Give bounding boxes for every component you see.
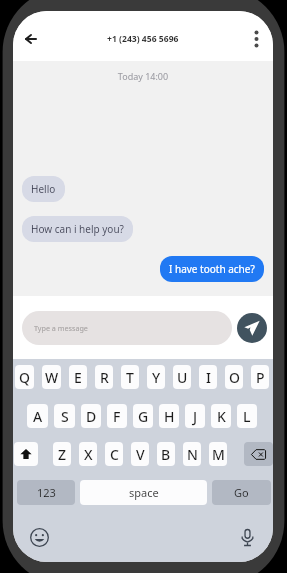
staticText: Q xyxy=(19,368,30,387)
staticText: G xyxy=(138,407,149,426)
button[interactable]: C xyxy=(105,442,123,466)
button[interactable]: U xyxy=(173,365,191,389)
button[interactable]: F xyxy=(107,404,127,428)
staticText: 123 xyxy=(37,485,56,500)
button[interactable]: E xyxy=(69,365,87,389)
staticText: D xyxy=(86,407,97,426)
button[interactable]: Y xyxy=(147,365,165,389)
button[interactable]: P xyxy=(251,365,269,389)
button[interactable]: N xyxy=(183,442,201,466)
button[interactable]: Backspace xyxy=(244,442,273,466)
staticText: P xyxy=(256,368,265,387)
button[interactable]: Z xyxy=(53,442,71,466)
button[interactable]: More options xyxy=(241,21,271,51)
staticText: How can i help you? xyxy=(31,222,124,236)
button[interactable]: A xyxy=(27,404,48,428)
button[interactable]: I have tooth ache? xyxy=(160,256,264,282)
staticText: R xyxy=(100,368,109,387)
button[interactable]: Send xyxy=(237,313,267,343)
staticText: N xyxy=(187,445,198,464)
staticText: Go xyxy=(234,485,249,500)
staticText: K xyxy=(217,407,226,426)
button[interactable]: O xyxy=(225,365,243,389)
button[interactable]: L xyxy=(237,404,257,428)
staticText: +1 (243) 456 5696 xyxy=(107,33,179,45)
staticText: J xyxy=(193,407,198,426)
staticText: Hello xyxy=(31,182,56,196)
button[interactable]: J xyxy=(185,404,205,428)
button[interactable]: T xyxy=(121,365,139,389)
staticText: O xyxy=(229,368,240,387)
button[interactable]: W xyxy=(42,365,61,389)
button[interactable]: Go xyxy=(212,480,271,505)
button[interactable]: Type a message xyxy=(22,311,232,345)
staticText: Today 14:00 xyxy=(22,70,264,82)
staticText: L xyxy=(243,407,251,426)
staticText: A xyxy=(33,407,43,426)
staticText: H xyxy=(164,407,175,426)
button[interactable]: Back xyxy=(17,25,45,53)
staticText: M xyxy=(212,445,225,464)
button[interactable]: Q xyxy=(15,365,34,389)
button[interactable]: space xyxy=(80,480,207,505)
button[interactable]: M xyxy=(209,442,227,466)
button[interactable]: 123 xyxy=(17,480,75,505)
staticText: F xyxy=(113,407,121,426)
button[interactable]: Emoji xyxy=(27,525,51,549)
button[interactable]: R xyxy=(95,365,113,389)
button[interactable]: S xyxy=(54,404,75,428)
button[interactable]: H xyxy=(159,404,179,428)
button[interactable]: Shift xyxy=(14,442,38,466)
button[interactable]: V xyxy=(131,442,149,466)
staticText: Y xyxy=(152,368,161,387)
staticText: Type a message xyxy=(34,323,88,333)
staticText: C xyxy=(110,445,119,464)
staticText: U xyxy=(177,368,188,387)
button[interactable]: How can i help you? xyxy=(22,216,133,242)
staticText: T xyxy=(126,368,134,387)
staticText: S xyxy=(61,407,69,426)
button[interactable]: Hello xyxy=(22,176,65,202)
staticText: Z xyxy=(58,445,67,464)
staticText: B xyxy=(161,445,171,464)
staticText: X xyxy=(84,445,93,464)
button[interactable]: G xyxy=(133,404,153,428)
button[interactable]: X xyxy=(79,442,97,466)
staticText: E xyxy=(74,368,82,387)
button[interactable]: Voice input xyxy=(235,525,259,549)
button[interactable]: I xyxy=(199,365,217,389)
staticText: I have tooth ache? xyxy=(169,262,255,276)
staticText: I xyxy=(206,368,211,387)
staticText: V xyxy=(136,445,145,464)
staticText: W xyxy=(45,368,59,387)
button[interactable]: K xyxy=(211,404,231,428)
button[interactable]: D xyxy=(81,404,101,428)
button[interactable]: B xyxy=(157,442,175,466)
staticText: space xyxy=(129,485,159,500)
